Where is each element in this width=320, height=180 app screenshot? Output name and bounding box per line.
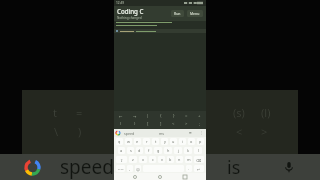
- staticText: .: [188, 166, 190, 171]
- staticText: 12:49: [116, 1, 125, 5]
- button[interactable]: →: [128, 114, 141, 119]
- button[interactable]: Menu: [187, 10, 203, 17]
- button[interactable]: [114, 21, 206, 111]
- button[interactable]: >: [180, 121, 193, 127]
- button[interactable]: +: [193, 113, 206, 119]
- staticText: z: [132, 157, 134, 162]
- button[interactable]: =: [180, 113, 193, 119]
- button[interactable]: m: [185, 156, 192, 163]
- staticText: →: [133, 114, 137, 119]
- staticText: +: [198, 113, 201, 119]
- staticText: u: [172, 139, 175, 144]
- button[interactable]: z: [129, 156, 137, 163]
- button[interactable]: ↵: [194, 165, 204, 172]
- staticText: Menu: [190, 11, 200, 16]
- staticText: [: [147, 121, 149, 127]
- button[interactable]: ;: [193, 121, 206, 127]
- staticText: i: [182, 139, 183, 144]
- button[interactable]: }: [167, 113, 180, 119]
- staticText: ): [134, 121, 136, 127]
- button[interactable]: s: [127, 147, 134, 154]
- staticText: g: [157, 148, 160, 153]
- staticText: ←: [119, 114, 123, 119]
- button[interactable]: x: [139, 156, 147, 163]
- button[interactable]: [: [141, 121, 154, 127]
- button[interactable]: d: [136, 147, 143, 154]
- staticText: q: [118, 139, 121, 144]
- staticText: y: [164, 139, 166, 144]
- button[interactable]: b: [167, 156, 174, 163]
- button[interactable]: <: [167, 121, 180, 127]
- button[interactable]: y: [161, 138, 168, 145]
- staticText: ≡: [189, 131, 193, 135]
- staticText: {: [160, 113, 162, 119]
- staticText: speed: [124, 131, 135, 136]
- button[interactable]: ⇧: [116, 156, 127, 163]
- button[interactable]: w: [125, 138, 132, 145]
- button[interactable]: q: [116, 138, 123, 145]
- staticText: ↵: [197, 167, 201, 171]
- button[interactable]: o: [188, 138, 195, 145]
- staticText: \: [54, 124, 59, 139]
- button[interactable]: |: [141, 113, 154, 119]
- staticText: ,: [129, 166, 131, 171]
- staticText: ⋮: [200, 131, 204, 135]
- button[interactable]: n: [176, 156, 183, 163]
- staticText: Coding C: [117, 7, 144, 15]
- button[interactable]: p: [197, 138, 204, 145]
- button[interactable]: g: [154, 147, 162, 154]
- staticText: r: [146, 139, 148, 144]
- button[interactable]: e: [134, 138, 141, 145]
- button[interactable]: ⌫: [194, 156, 204, 163]
- button[interactable]: u: [170, 138, 177, 145]
- staticText: ?123: [118, 167, 124, 170]
- button[interactable]: i: [179, 138, 186, 145]
- staticText: j: [178, 148, 179, 153]
- button[interactable]: h: [164, 147, 172, 154]
- staticText: f: [148, 148, 150, 153]
- button[interactable]: Recents: [181, 173, 189, 180]
- button[interactable]: Home: [156, 173, 164, 180]
- staticText: t: [53, 105, 57, 120]
- staticText: c: [152, 157, 154, 162]
- button[interactable]: v: [158, 156, 165, 163]
- button[interactable]: j: [174, 147, 182, 154]
- button[interactable]: k: [184, 147, 192, 154]
- button[interactable]: l: [194, 147, 202, 154]
- staticText: |: [146, 113, 149, 119]
- button[interactable]: t: [152, 138, 159, 145]
- staticText: n: [178, 157, 181, 162]
- staticText: d: [138, 148, 141, 153]
- staticText: a: [120, 148, 123, 153]
- button[interactable]: (: [114, 121, 128, 127]
- button[interactable]: Voice search: [280, 158, 298, 176]
- button[interactable]: Run: [171, 10, 184, 17]
- button[interactable]: ]: [154, 121, 167, 127]
- staticText: <: [236, 124, 243, 139]
- staticText: ): [78, 124, 82, 139]
- staticText: }: [173, 113, 175, 119]
- staticText: p: [199, 139, 202, 144]
- button[interactable]: r: [143, 138, 150, 145]
- button[interactable]: ←: [114, 114, 128, 119]
- staticText: =: [76, 105, 83, 120]
- button[interactable]: .: [186, 165, 192, 172]
- button[interactable]: ?123: [116, 165, 125, 172]
- staticText: v: [161, 157, 163, 162]
- button[interactable]: Back: [131, 173, 139, 180]
- staticText: (l): [261, 105, 271, 120]
- button[interactable]: {: [154, 113, 167, 119]
- staticText: >: [261, 124, 268, 139]
- button[interactable]: a: [118, 147, 125, 154]
- staticText: k: [187, 148, 190, 153]
- staticText: ☺: [136, 167, 140, 171]
- button[interactable]: c: [149, 156, 156, 163]
- staticText: o: [190, 139, 193, 144]
- button[interactable]: ☺: [135, 165, 141, 172]
- button[interactable]: Google: [24, 159, 40, 175]
- staticText: Run: [174, 11, 181, 16]
- button[interactable]: ): [128, 121, 141, 127]
- button[interactable]: f: [145, 147, 152, 154]
- button[interactable]: ,: [127, 165, 133, 172]
